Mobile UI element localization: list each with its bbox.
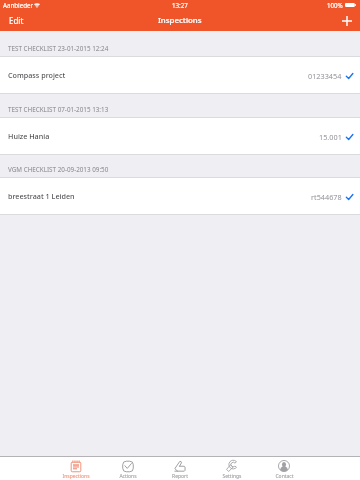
button[interactable]: Report (154, 458, 206, 480)
staticText: 13:27 (172, 1, 188, 9)
staticText: Report (172, 473, 188, 480)
button[interactable]: Compass project (0, 57, 360, 94)
staticText: Edit (9, 15, 24, 26)
staticText: Settings (222, 473, 242, 480)
staticText: breestraat 1 Leiden (8, 191, 75, 201)
staticText: TEST CHECKLIST 07-01-2015 13:13 (8, 105, 109, 114)
button[interactable]: Inspections (50, 458, 102, 480)
staticText: Huize Hania (8, 131, 50, 141)
staticText: Compass project (8, 70, 66, 80)
staticText: Inspections (158, 15, 202, 26)
staticText: VGM CHECKLIST 20-09-2013 09:50 (8, 165, 109, 174)
staticText: rt544678 (311, 192, 342, 202)
button[interactable]: Add inspection (334, 13, 360, 29)
button[interactable]: Contact (258, 458, 310, 480)
staticText: Contact (275, 473, 294, 480)
staticText: Inspections (62, 473, 90, 480)
staticText: Aanbieder (3, 1, 33, 9)
button[interactable]: Edit (0, 11, 33, 30)
staticText: 15.001 (319, 132, 342, 142)
staticText: Actions (119, 473, 137, 480)
staticText: TEST CHECKLIST 23-01-2015 12:24 (8, 44, 109, 53)
button[interactable]: Huize Hania (0, 118, 360, 155)
button[interactable]: breestraat 1 Leiden (0, 178, 360, 215)
staticText: 01233454 (308, 71, 342, 81)
button[interactable]: Actions (102, 458, 154, 480)
staticText: 100% (327, 1, 343, 9)
button[interactable]: Settings (206, 458, 258, 480)
